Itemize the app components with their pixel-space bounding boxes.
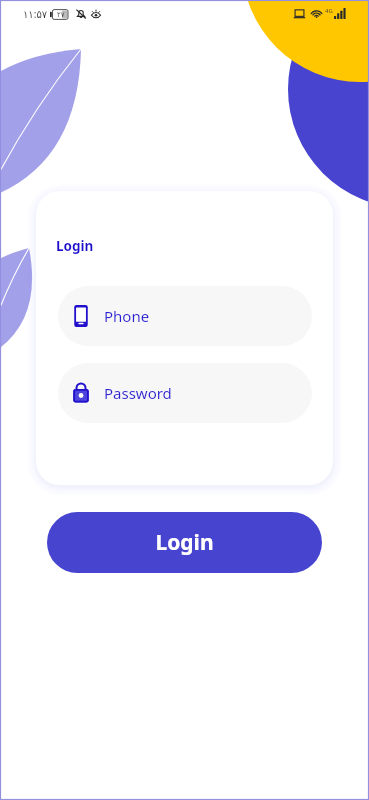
staticText: Login (56, 237, 94, 255)
button[interactable]: Phone (58, 286, 312, 346)
staticText: ۲۷ (57, 11, 65, 19)
button[interactable]: Login (47, 512, 322, 573)
staticText: Password (104, 383, 172, 403)
staticText: Phone (104, 306, 150, 326)
staticText: ۱۱:۵۷ (23, 7, 48, 21)
button[interactable]: Password (58, 363, 312, 423)
staticText: 4G (325, 7, 333, 15)
staticText: Login (155, 528, 214, 557)
